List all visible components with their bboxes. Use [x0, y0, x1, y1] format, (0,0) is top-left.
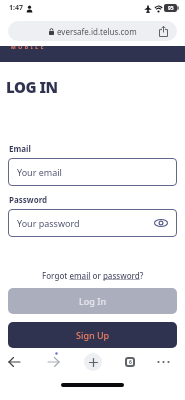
button[interactable]: Sign Up — [8, 322, 177, 348]
staticText: eversafe.id.telus.com — [57, 26, 137, 37]
staticText: Sign Up — [76, 329, 110, 341]
button[interactable]: Forgot email or password? — [42, 270, 144, 281]
staticText: 95 — [168, 5, 174, 12]
button[interactable]: Your password — [8, 209, 177, 237]
button[interactable]: 6 — [125, 357, 135, 367]
staticText: 6 — [129, 359, 132, 366]
button[interactable]: Log In — [8, 288, 177, 314]
staticText: LOG IN — [6, 77, 58, 97]
button[interactable] — [156, 354, 174, 370]
button[interactable] — [154, 218, 168, 228]
staticText: MOBILE — [11, 46, 47, 51]
button[interactable] — [43, 352, 63, 372]
staticText: 1:47 — [9, 3, 23, 13]
button[interactable]: Your email — [8, 158, 177, 186]
staticText: Password — [9, 194, 48, 205]
button[interactable] — [84, 353, 102, 371]
button[interactable] — [5, 352, 25, 372]
staticText: Log In — [79, 295, 107, 307]
staticText: Your password — [17, 217, 80, 229]
staticText: Email — [9, 143, 31, 154]
button[interactable]: eversafe.id.telus.com — [8, 21, 177, 41]
staticText: Your email — [17, 166, 62, 178]
